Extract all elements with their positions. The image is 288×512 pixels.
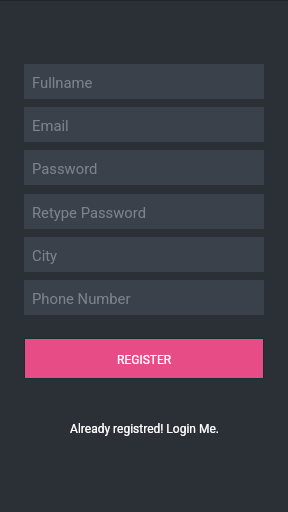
staticText: Already registred! Login Me. xyxy=(70,422,219,436)
staticText: Password xyxy=(32,160,98,177)
button[interactable]: Phone Number xyxy=(24,280,264,315)
button[interactable]: City xyxy=(24,237,264,272)
button[interactable]: Fullname xyxy=(24,64,264,99)
button[interactable]: Retype Password xyxy=(24,194,264,229)
button[interactable]: REGISTER xyxy=(24,338,264,379)
staticText: City xyxy=(32,247,58,264)
button[interactable]: Already registred! Login Me. xyxy=(0,414,288,442)
staticText: REGISTER xyxy=(117,353,172,367)
button[interactable]: Password xyxy=(24,150,264,185)
button[interactable]: Email xyxy=(24,107,264,142)
staticText: Phone Number xyxy=(32,290,131,307)
staticText: Email xyxy=(32,117,69,134)
staticText: Retype Password xyxy=(32,204,146,221)
staticText: Fullname xyxy=(32,74,93,91)
